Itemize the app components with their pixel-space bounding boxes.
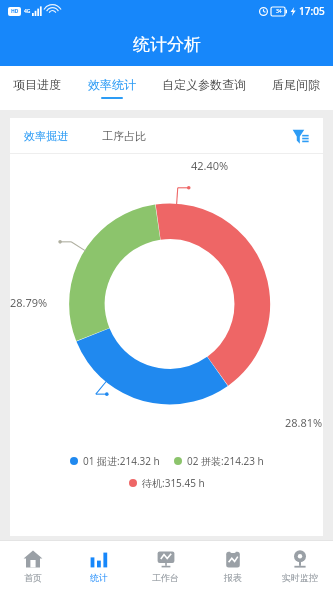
staticText: 28.81% [285,415,323,430]
staticText: 42.40% [191,158,229,173]
button[interactable]: 工作台 [132,540,199,592]
staticText: 17:05 [299,4,325,18]
staticText: 34 [276,8,282,15]
button[interactable]: 首页 [0,540,66,592]
button[interactable]: 盾尾间隙 [258,66,333,110]
staticText: 报表 [224,572,242,583]
staticText: 01 掘进:214.32 h [83,454,160,468]
button[interactable]: 报表 [199,540,266,592]
staticText: 统计 [90,572,108,583]
staticText: 28.79% [10,295,48,310]
staticText: 实时监控 [282,572,318,583]
button[interactable]: 自定义参数查询 [149,66,258,110]
staticText: 首页 [24,572,42,583]
staticText: 4G [24,8,31,15]
staticText: HD [11,8,19,15]
button[interactable]: 效率掘进 [22,125,70,147]
staticText: 工序占比 [102,129,146,143]
staticText: 工作台 [152,572,179,583]
button[interactable]: 效率统计 [74,66,149,110]
staticText: 效率统计 [88,77,136,92]
staticText: 待机:315.45 h [142,476,205,490]
staticText: 统计分析 [133,34,201,55]
button[interactable]: 统计 [66,540,132,592]
button[interactable]: 实时监控 [266,540,333,592]
button[interactable]: 工序占比 [100,125,148,147]
staticText: 盾尾间隙 [272,77,320,92]
staticText: 项目进度 [13,77,61,92]
staticText: 02 拼装:214.23 h [187,454,264,468]
button[interactable]: 项目进度 [0,66,74,110]
button[interactable]: Filter [289,125,311,147]
staticText: 效率掘进 [24,129,68,143]
staticText: 自定义参数查询 [162,77,246,92]
